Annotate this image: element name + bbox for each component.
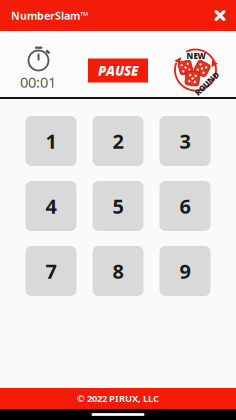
button[interactable]: 2 <box>92 116 143 166</box>
staticText: NumberSlam™ <box>11 8 88 23</box>
staticText: NEW <box>186 51 205 61</box>
staticText: 7 <box>45 258 56 284</box>
button[interactable]: 8 <box>92 246 143 296</box>
button[interactable]: 9 <box>159 246 210 296</box>
button[interactable]: 3 <box>159 116 210 166</box>
staticText: 00:01 <box>20 72 56 92</box>
button[interactable]: 1 <box>25 116 76 166</box>
staticText: ROUND <box>192 78 222 89</box>
staticText: 2 <box>112 128 123 154</box>
button[interactable]: 5 <box>92 181 143 231</box>
staticText: 6 <box>179 193 190 219</box>
staticText: PAUSE <box>98 62 138 79</box>
button[interactable]: Close <box>208 3 232 27</box>
staticText: 8 <box>112 258 123 284</box>
staticText: 9 <box>179 258 190 284</box>
staticText: © 2022 PIRUX, LLC <box>77 392 159 405</box>
staticText: 4 <box>45 193 56 219</box>
staticText: 3 <box>179 128 190 154</box>
button[interactable]: 7 <box>25 246 76 296</box>
button[interactable]: 4 <box>25 181 76 231</box>
staticText: 5 <box>112 193 123 219</box>
button[interactable]: PAUSE <box>88 58 148 82</box>
button[interactable]: 6 <box>159 181 210 231</box>
button[interactable]: New Round <box>172 47 218 93</box>
staticText: 1 <box>45 128 56 154</box>
